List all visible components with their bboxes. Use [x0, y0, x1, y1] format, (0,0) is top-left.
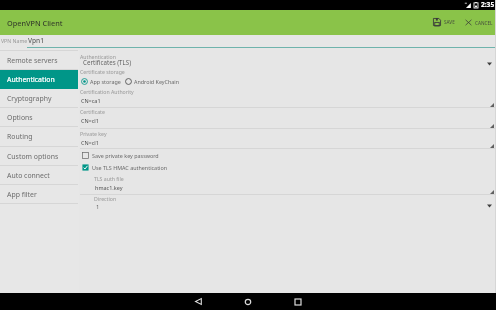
staticText: TLS auth file — [94, 175, 124, 182]
staticText: OpenVPN Client — [7, 18, 63, 28]
button[interactable]: SAVE — [430, 14, 458, 30]
button[interactable]: Options — [0, 108, 78, 127]
button[interactable]: App filter — [0, 185, 78, 204]
button[interactable]: Android KeyChain — [125, 78, 180, 85]
staticText: Auto connect — [7, 171, 50, 180]
staticText: Options — [7, 113, 33, 122]
button[interactable]: Custom options — [0, 147, 78, 166]
button[interactable]: App storage — [81, 78, 121, 85]
staticText: Android KeyChain — [134, 78, 180, 85]
button[interactable]: Routing — [0, 127, 78, 146]
staticText: Cryptography — [7, 94, 52, 103]
staticText: CN=cl1 — [81, 139, 99, 146]
staticText: VPN Name — [1, 37, 28, 44]
button[interactable]: Authentication — [0, 70, 78, 89]
staticText: SAVE — [444, 19, 455, 25]
button[interactable]: Recents — [273, 293, 323, 310]
button[interactable]: Use TLS HMAC authentication — [79, 162, 496, 173]
staticText: Certificate storage — [80, 68, 125, 75]
staticText: Authentication — [80, 53, 116, 60]
staticText: Private key — [80, 130, 107, 137]
staticText: CANCEL — [475, 20, 493, 26]
staticText: Authentication — [7, 75, 55, 84]
staticText: CN=cl1 — [81, 117, 99, 124]
staticText: Custom options — [7, 152, 59, 161]
staticText: 1 — [96, 203, 100, 211]
button[interactable]: Auto connect — [0, 166, 78, 185]
button[interactable]: CANCEL — [462, 15, 496, 30]
staticText: Remote servers — [7, 56, 58, 65]
staticText: Routing — [7, 132, 33, 141]
staticText: Certificates (TLS) — [83, 58, 132, 66]
staticText: Certification Authority — [80, 88, 134, 95]
staticText: CN=ca1 — [81, 97, 101, 104]
button[interactable]: Remote servers — [0, 51, 78, 70]
staticText: App filter — [7, 190, 37, 199]
staticText: Vpn1 — [28, 36, 44, 45]
staticText: Direction — [94, 195, 117, 202]
staticText: 2:35 — [481, 0, 495, 9]
staticText: hmac1.key — [95, 184, 123, 191]
staticText: Certificate — [80, 108, 105, 115]
staticText: App storage — [90, 78, 121, 85]
button[interactable]: Back — [173, 293, 223, 310]
staticText: Use TLS HMAC authentication — [92, 164, 168, 171]
button[interactable]: Save private key password — [79, 150, 496, 161]
staticText: Save private key password — [92, 152, 159, 159]
button[interactable]: Home — [223, 293, 273, 310]
button[interactable]: Cryptography — [0, 89, 78, 108]
